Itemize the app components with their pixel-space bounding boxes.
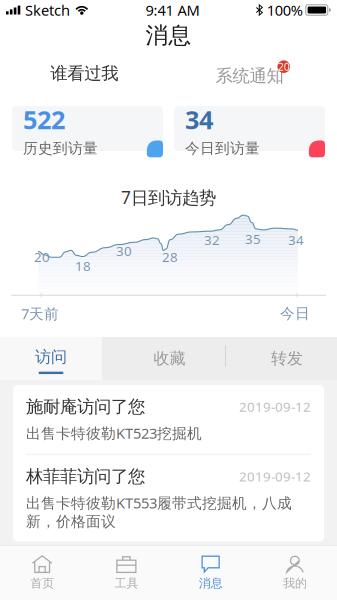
button[interactable]: 收藏 xyxy=(102,337,237,380)
staticText: 访问 xyxy=(35,347,67,367)
button[interactable]: 工具 xyxy=(84,545,168,600)
staticText: 消息 xyxy=(199,576,223,591)
staticText: 历史到访量 xyxy=(23,139,98,157)
staticText: 林菲菲访问了您 xyxy=(26,466,145,487)
button[interactable]: 消息 xyxy=(168,545,253,600)
staticText: 出售卡特彼勒KT553履带式挖掘机，八成新，价格面议 xyxy=(26,493,292,531)
staticText: 出售卡特彼勒KT523挖掘机 xyxy=(26,423,202,443)
staticText: 34 xyxy=(288,231,304,249)
staticText: 2019-09-12 xyxy=(239,398,311,415)
staticText: 收藏 xyxy=(153,349,185,368)
staticText: 7天前 xyxy=(21,304,59,323)
staticText: 20 xyxy=(34,248,50,266)
staticText: 20 xyxy=(278,60,290,74)
staticText: 转发 xyxy=(271,349,303,368)
staticText: 100% xyxy=(267,0,303,20)
staticText: 522 xyxy=(23,103,65,136)
staticText: 2019-09-12 xyxy=(239,468,311,485)
staticText: 首页 xyxy=(30,576,54,591)
button[interactable]: 系统通知 xyxy=(168,51,337,96)
button[interactable]: 施耐庵访问了您 xyxy=(13,385,324,454)
staticText: 谁看过我 xyxy=(50,63,118,84)
staticText: 30 xyxy=(116,242,132,260)
staticText: 32 xyxy=(204,231,220,249)
button[interactable]: 谁看过我 xyxy=(0,51,168,96)
staticText: 今日到访量 xyxy=(185,139,260,157)
button[interactable]: 访问 xyxy=(0,337,102,380)
staticText: 施耐庵访问了您 xyxy=(26,396,145,417)
staticText: 7日到访趋势 xyxy=(121,186,216,209)
staticText: 35 xyxy=(245,230,261,248)
staticText: 今日 xyxy=(280,304,310,322)
staticText: 工具 xyxy=(114,576,138,591)
button[interactable]: 转发 xyxy=(237,337,337,380)
staticText: 我的 xyxy=(283,576,307,591)
staticText: 9:41 AM xyxy=(145,0,199,20)
staticText: 34 xyxy=(185,103,213,136)
staticText: 28 xyxy=(162,248,178,266)
button[interactable]: 首页 xyxy=(0,545,84,600)
button[interactable]: 我的 xyxy=(253,545,337,600)
staticText: 系统通知 xyxy=(215,65,283,87)
button[interactable]: 林菲菲访问了您 xyxy=(13,455,324,542)
staticText: 消息 xyxy=(145,22,191,49)
staticText: 18 xyxy=(75,257,91,275)
staticText: Sketch xyxy=(25,0,70,20)
